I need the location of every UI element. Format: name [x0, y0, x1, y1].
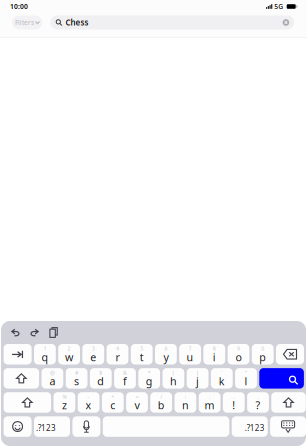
button[interactable]: 4 [107, 344, 128, 364]
staticText: h [170, 374, 177, 388]
staticText: 5 [140, 345, 143, 352]
staticText: i [213, 350, 216, 364]
staticText: u [187, 350, 194, 364]
button[interactable]: + [102, 392, 124, 413]
button[interactable]: Filters [12, 15, 42, 29]
button[interactable]: 6 [155, 344, 177, 364]
button[interactable]: = [126, 392, 148, 413]
staticText: 7 [189, 345, 192, 352]
button[interactable]: 1 [34, 344, 56, 364]
staticText: e [90, 350, 96, 364]
button[interactable]: Search [259, 368, 304, 389]
staticText: 1 [43, 345, 46, 352]
button[interactable]: Shift [271, 392, 306, 413]
button[interactable]: 2 [58, 344, 80, 364]
staticText: * [148, 369, 151, 376]
staticText: m [205, 398, 215, 412]
button[interactable]: 9 [228, 344, 249, 364]
staticText: g [146, 374, 153, 388]
staticText: s [74, 374, 79, 388]
button[interactable]: 7 [179, 344, 201, 364]
button[interactable]: Tab [4, 344, 32, 364]
button[interactable]: ; [174, 392, 196, 413]
button[interactable]: Space [103, 416, 229, 437]
button[interactable]: . [247, 392, 269, 413]
button[interactable]: 0 [252, 344, 274, 364]
button[interactable]: Emoji [4, 416, 32, 437]
staticText: o [235, 350, 241, 364]
staticText: & [123, 369, 127, 376]
button[interactable]: Hide keyboard [270, 416, 306, 437]
button[interactable]: - [78, 392, 99, 413]
staticText: v [134, 398, 139, 412]
staticText: , [233, 393, 234, 400]
staticText: 5G [274, 2, 283, 11]
staticText: c [110, 398, 115, 412]
staticText: # [75, 369, 78, 376]
staticText: 2 [68, 345, 71, 352]
button[interactable]: 5 [131, 344, 153, 364]
staticText: x [86, 398, 92, 412]
staticText: + [111, 393, 114, 400]
button[interactable]: Caps lock [4, 368, 39, 389]
staticText: l [244, 374, 247, 388]
staticText: ! [232, 398, 235, 412]
button[interactable]: , [223, 392, 245, 413]
staticText: @ [50, 369, 55, 376]
button[interactable]: ' [211, 368, 233, 389]
button[interactable]: Shift [4, 392, 51, 413]
staticText: 3 [92, 345, 95, 352]
staticText: j [196, 374, 199, 388]
staticText: p [259, 350, 266, 364]
button[interactable]: Numbers and symbols [232, 416, 268, 437]
button[interactable]: Undo [6, 324, 25, 341]
staticText: 10:00 [10, 2, 28, 11]
staticText: d [97, 374, 104, 388]
staticText: q [41, 350, 48, 364]
button[interactable]: & [114, 368, 136, 389]
button[interactable]: Redo [25, 324, 44, 341]
staticText: ; [185, 393, 186, 400]
staticText: 6 [164, 345, 167, 352]
button[interactable]: Delete [276, 344, 304, 364]
staticText: 8 [213, 345, 216, 352]
staticText: .?123 [245, 423, 265, 433]
button[interactable]: Numbers and symbols [34, 416, 70, 437]
staticText: = [135, 393, 138, 400]
staticText: z [62, 398, 67, 412]
staticText: w [65, 350, 73, 364]
staticText: $ [99, 369, 102, 376]
staticText: ) [197, 369, 199, 376]
staticText: f [123, 374, 127, 388]
staticText: n [182, 398, 189, 412]
button[interactable]: ( [162, 368, 184, 389]
staticText: a [49, 374, 55, 388]
staticText: 4 [116, 345, 119, 352]
button[interactable]: % [53, 392, 75, 413]
button[interactable]: # [66, 368, 87, 389]
staticText: ? [255, 398, 260, 412]
button[interactable]: ) [187, 368, 208, 389]
button[interactable]: * [138, 368, 160, 389]
staticText: Filters [15, 18, 34, 27]
button[interactable]: : [199, 392, 220, 413]
button[interactable]: 8 [203, 344, 225, 364]
staticText: b [158, 398, 165, 412]
button[interactable]: “ [235, 368, 257, 389]
staticText: : [209, 393, 210, 400]
button[interactable]: Paste [44, 324, 63, 341]
button[interactable]: @ [41, 368, 63, 389]
button[interactable]: / [150, 392, 172, 413]
button[interactable]: Chess [50, 15, 294, 29]
button[interactable]: Dictation [72, 416, 100, 437]
staticText: “ [245, 369, 247, 376]
staticText: .?123 [36, 423, 56, 433]
staticText: k [219, 374, 225, 388]
staticText: 9 [237, 345, 240, 352]
staticText: t [140, 350, 144, 364]
staticText: y [163, 350, 168, 364]
staticText: - [88, 393, 90, 400]
staticText: 0 [261, 345, 264, 352]
button[interactable]: $ [90, 368, 112, 389]
button[interactable]: 3 [82, 344, 104, 364]
